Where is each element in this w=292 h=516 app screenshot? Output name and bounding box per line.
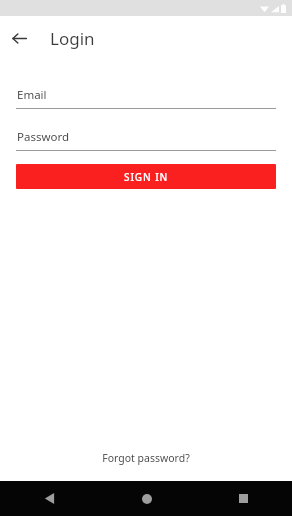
button[interactable]: Email	[16, 87, 276, 109]
button[interactable]: Home	[98, 481, 195, 516]
staticText: Password	[17, 129, 70, 145]
staticText: Login	[50, 27, 95, 50]
staticText: Email	[17, 87, 47, 103]
button[interactable]: Back	[0, 481, 98, 516]
staticText: SIGN IN	[124, 170, 169, 184]
button[interactable]: Password	[16, 129, 276, 151]
button[interactable]: Back	[7, 26, 31, 50]
button[interactable]: Recent apps	[195, 481, 292, 516]
staticText: Forgot password?	[102, 451, 190, 465]
button[interactable]: SIGN IN	[16, 164, 276, 189]
button[interactable]: Forgot password?	[0, 445, 292, 471]
